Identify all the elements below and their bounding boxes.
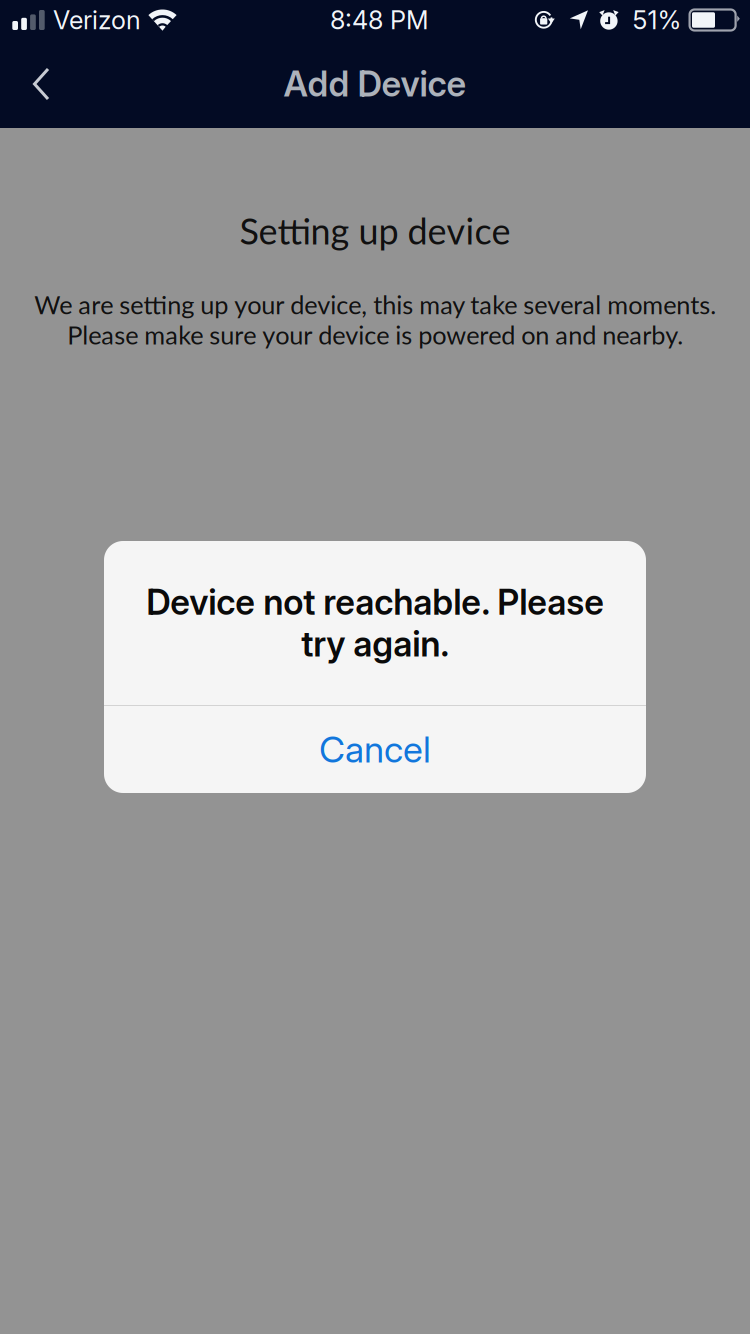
staticText: Cancel: [319, 728, 431, 771]
staticText: We are setting up your device, this may …: [34, 289, 716, 350]
button[interactable]: Cancel: [104, 706, 646, 793]
staticText: Add Device: [283, 63, 466, 105]
button[interactable]: Back: [0, 40, 75, 128]
staticText: 8:48 PM: [330, 5, 429, 35]
staticText: 51%: [633, 5, 682, 35]
staticText: Device not reachable. Please try again.: [146, 581, 604, 665]
staticText: Verizon: [53, 5, 141, 35]
staticText: Setting up device: [239, 209, 510, 252]
